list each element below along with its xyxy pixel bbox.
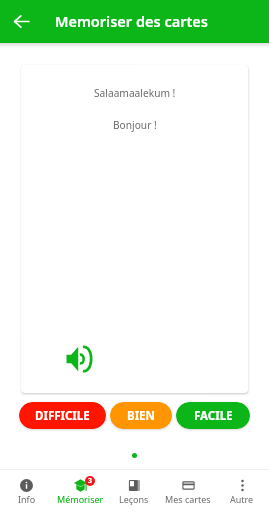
button[interactable]: Mes cartes [161,470,215,512]
staticText: Autre [230,493,254,505]
staticText: Bonjour ! [113,118,157,132]
staticText: Leçons [119,493,149,505]
button[interactable]: Back [0,0,43,43]
staticText: Info [18,493,36,505]
staticText: FACILE [194,408,233,424]
staticText: DIFFICILE [35,408,90,424]
button[interactable]: FACILE [176,402,250,429]
button[interactable]: Autre [215,470,269,512]
button[interactable]: DIFFICILE [19,402,106,429]
staticText: 3 [88,476,93,486]
staticText: Mes cartes [165,493,211,505]
button[interactable]: Leçons [107,470,161,512]
button[interactable]: BIEN [110,402,172,429]
button[interactable]: Play audio [66,346,92,372]
button[interactable]: 3 [53,470,107,512]
button[interactable]: Info [0,470,53,512]
staticText: Memoriser des cartes [55,11,208,31]
staticText: Mémoriser [57,493,104,505]
staticText: BIEN [127,408,155,424]
staticText: Salaamaalekum ! [94,86,176,100]
